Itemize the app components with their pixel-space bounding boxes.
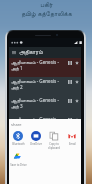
staticText: Bluetooth bbox=[12, 142, 25, 146]
staticText: தமிழ் கத்தோலிக்க bbox=[21, 9, 72, 18]
button[interactable]: Save to Drive bbox=[9, 152, 27, 167]
staticText: Email bbox=[69, 142, 76, 146]
staticText: share bbox=[11, 122, 22, 127]
staticText: Copy to clipboard bbox=[48, 142, 60, 149]
staticText: ஆதியாகமம் - Genesis - bbox=[11, 78, 59, 84]
staticText: அத் 3 bbox=[11, 103, 23, 109]
button[interactable]: Copy to clipboard bbox=[45, 131, 63, 149]
staticText: அதிகாரம் bbox=[19, 50, 43, 56]
button[interactable]: Email bbox=[63, 131, 81, 146]
staticText: ஆதியாகமம் - Genesis - bbox=[11, 97, 59, 103]
button[interactable]: ஆதியாகமம் - Genesis - bbox=[9, 96, 81, 115]
button[interactable]: ஆதியாகமம் - Genesis - bbox=[9, 77, 81, 96]
staticText: அத் 1 bbox=[11, 65, 23, 71]
button[interactable]: ஆதியாகமம் - Genesis - bbox=[9, 115, 81, 134]
button[interactable]: Bookmark bbox=[73, 115, 81, 125]
button[interactable]: Bookmark bbox=[73, 77, 81, 87]
button[interactable]: Bookmark bbox=[73, 58, 81, 68]
button[interactable]: Notes bbox=[66, 58, 73, 68]
button[interactable]: Notes bbox=[66, 77, 73, 87]
staticText: ஆதியாகமம் - Genesis - bbox=[11, 59, 59, 65]
staticText: OneDrive bbox=[30, 142, 42, 146]
staticText: ஆதியாகமம் - Genesis - bbox=[11, 116, 59, 122]
button[interactable]: Bookmark bbox=[73, 96, 81, 106]
staticText: அத் 4 bbox=[11, 122, 23, 128]
button[interactable]: Notes bbox=[66, 96, 73, 106]
button[interactable]: Bluetooth bbox=[9, 131, 27, 146]
button[interactable]: Open navigation menu bbox=[9, 47, 19, 58]
button[interactable]: OneDrive bbox=[27, 131, 45, 146]
staticText: Save to Drive bbox=[10, 163, 27, 167]
staticText: அத் 2 bbox=[11, 84, 23, 90]
staticText: பகிர் bbox=[40, 2, 53, 9]
button[interactable]: Notes bbox=[66, 115, 73, 125]
button[interactable]: ஆதியாகமம் - Genesis - bbox=[9, 58, 81, 77]
